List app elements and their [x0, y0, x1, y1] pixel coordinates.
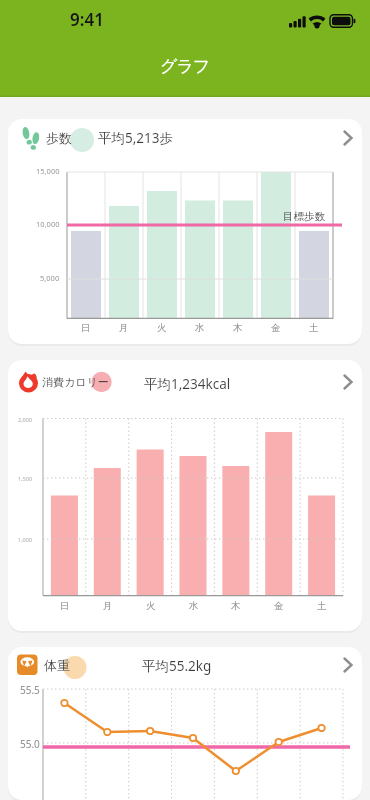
staticText: 平均55.2kg — [142, 657, 212, 675]
staticText: 水 — [195, 322, 205, 334]
staticText: グラフ — [160, 56, 210, 77]
staticText: 土 — [317, 600, 327, 612]
staticText: 10,000 — [36, 219, 60, 229]
staticText: 土 — [309, 322, 319, 334]
staticText: 火 — [146, 600, 156, 612]
staticText: 平均5,213歩 — [98, 129, 174, 147]
staticText: 平均1,234kcal — [144, 375, 231, 393]
staticText: 55.5 — [20, 683, 40, 697]
staticText: 1,500 — [18, 475, 33, 482]
staticText: 2,000 — [18, 416, 33, 423]
staticText: 9:41 — [70, 8, 104, 31]
staticText: 木 — [231, 600, 241, 612]
staticText: 目標歩数 — [283, 210, 325, 223]
staticText: 日 — [81, 322, 91, 334]
staticText: 消費カロリー — [42, 375, 109, 389]
staticText: 月 — [119, 322, 129, 334]
staticText: 月 — [103, 600, 113, 612]
staticText: 歩数 — [46, 130, 72, 146]
staticText: 金 — [271, 322, 281, 334]
button[interactable]: 消費カロリー — [8, 360, 362, 631]
staticText: 体重 — [44, 657, 70, 673]
staticText: 55.0 — [20, 737, 40, 751]
staticText: 5,000 — [40, 273, 60, 283]
staticText: 木 — [233, 322, 243, 334]
staticText: 水 — [189, 600, 199, 612]
button[interactable]: 体重 — [8, 647, 362, 800]
button[interactable]: 歩数 — [8, 119, 362, 344]
staticText: 日 — [60, 600, 70, 612]
staticText: 火 — [157, 322, 167, 334]
staticText: 金 — [274, 600, 284, 612]
staticText: 15,000 — [36, 166, 60, 176]
staticText: 1,000 — [18, 536, 33, 543]
